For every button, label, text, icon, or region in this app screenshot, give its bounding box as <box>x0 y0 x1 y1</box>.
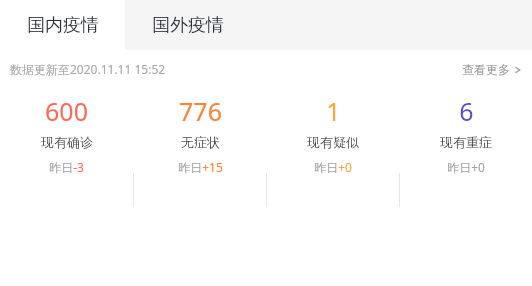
staticText: 1 <box>326 94 341 128</box>
staticText: 昨日+0 <box>447 159 485 175</box>
button[interactable]: 6 <box>400 94 532 175</box>
staticText: 现有疑似 <box>307 134 359 150</box>
button[interactable]: 查看更多 <box>462 62 522 77</box>
staticText: 国内疫情 <box>27 14 99 37</box>
button[interactable]: 国内疫情 <box>0 0 125 50</box>
staticText: 昨日-3 <box>49 159 84 175</box>
staticText: 600 <box>45 94 88 128</box>
staticText: 昨日+15 <box>178 159 223 175</box>
staticText: 国外疫情 <box>152 14 224 37</box>
staticText: 现有重症 <box>440 134 492 150</box>
staticText: 数据更新至2020.11.11 15:52 <box>10 61 166 77</box>
staticText: 现有确诊 <box>41 134 93 150</box>
button[interactable]: 1 <box>267 94 399 175</box>
staticText: 昨日+0 <box>314 159 352 175</box>
staticText: 6 <box>459 94 474 128</box>
staticText: 无症状 <box>181 134 220 150</box>
button[interactable]: 国外疫情 <box>125 0 250 50</box>
button[interactable]: 600 <box>0 94 133 175</box>
staticText: 776 <box>179 94 222 128</box>
other: View more <box>514 66 522 74</box>
button[interactable]: 776 <box>134 94 266 175</box>
staticText: 查看更多 <box>462 62 510 77</box>
